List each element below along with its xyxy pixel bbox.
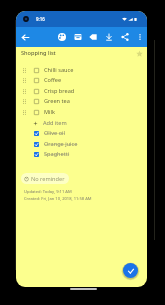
button[interactable]: Toggle item xyxy=(16,128,147,138)
staticText: Chilli sauce xyxy=(44,66,74,74)
button[interactable]: Toggle item xyxy=(34,131,39,136)
staticText: Shopping list xyxy=(21,49,56,57)
staticText: Spaghetti xyxy=(44,150,70,158)
button[interactable]: Share xyxy=(117,27,132,47)
staticText: Add item xyxy=(43,119,67,127)
staticText: Crisp bread xyxy=(44,87,75,95)
button[interactable]: Add item xyxy=(16,118,147,128)
button[interactable]: Back xyxy=(18,27,33,47)
staticText: Created: Fri, Jan 10, 2018, 11:58 AM xyxy=(24,196,92,202)
staticText: Coffee xyxy=(44,76,62,84)
button[interactable]: Toggle item xyxy=(16,86,147,96)
button[interactable]: Toggle item xyxy=(34,68,39,73)
button[interactable]: Toggle item xyxy=(16,149,147,159)
staticText: Olive oil xyxy=(44,129,65,137)
staticText: Orange juice xyxy=(44,140,78,148)
button[interactable]: Toggle item xyxy=(16,107,147,117)
staticText: Updated: Today, 9:11 AM xyxy=(24,189,72,195)
button[interactable]: Label xyxy=(85,27,100,47)
staticText: Milk xyxy=(44,108,55,116)
button[interactable]: Toggle item xyxy=(16,75,147,85)
button[interactable]: Toggle item xyxy=(34,99,39,104)
button[interactable]: Toggle item xyxy=(16,65,147,75)
button[interactable]: Toggle item xyxy=(34,110,39,115)
button[interactable]: Toggle item xyxy=(34,89,39,94)
button[interactable]: More options xyxy=(132,27,147,47)
staticText: 9:16 xyxy=(36,16,45,22)
button[interactable]: No reminder xyxy=(21,173,69,184)
button[interactable]: Toggle item xyxy=(16,139,147,149)
button[interactable]: Toggle item xyxy=(34,142,39,147)
button[interactable]: Pin note xyxy=(134,48,144,58)
staticText: No reminder xyxy=(31,175,65,183)
button[interactable]: Toggle item xyxy=(34,152,39,157)
button[interactable]: Archive xyxy=(70,27,85,47)
button[interactable]: Pin xyxy=(101,27,116,47)
button[interactable]: Toggle item xyxy=(34,78,39,83)
button[interactable]: Toggle item xyxy=(16,96,147,106)
staticText: Green tea xyxy=(44,97,70,105)
button[interactable]: Change colour xyxy=(54,27,69,47)
button[interactable]: Done xyxy=(123,263,138,278)
